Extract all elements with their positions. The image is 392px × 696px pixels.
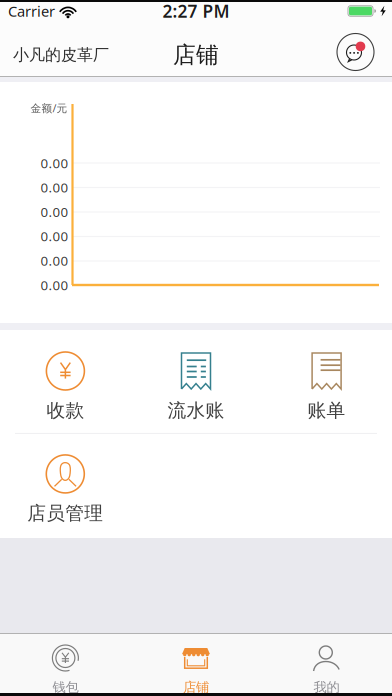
- staticText: 账单: [308, 399, 346, 422]
- staticText: 店铺: [173, 41, 219, 69]
- staticText: 0.00: [40, 203, 68, 221]
- staticText: 0.00: [40, 227, 68, 245]
- staticText: 0.00: [40, 154, 68, 172]
- staticText: 店员管理: [27, 502, 103, 525]
- staticText: 0.00: [40, 276, 68, 294]
- button[interactable]: 店员管理: [0, 455, 131, 525]
- button[interactable]: 钱包: [0, 634, 131, 695]
- staticText: Carrier: [8, 1, 55, 21]
- button[interactable]: 账单: [261, 352, 392, 422]
- button[interactable]: 消息: [337, 25, 392, 71]
- staticText: 金额/元: [30, 101, 67, 115]
- staticText: 我的: [314, 679, 340, 695]
- staticText: 店铺: [183, 679, 209, 695]
- staticText: 小凡的皮革厂: [13, 45, 109, 65]
- staticText: 收款: [46, 399, 84, 422]
- button[interactable]: 我的: [261, 634, 392, 695]
- button[interactable]: 流水账: [131, 352, 261, 422]
- staticText: 0.00: [40, 178, 68, 196]
- staticText: 2:27 PM: [162, 0, 229, 22]
- staticText: 钱包: [52, 679, 78, 695]
- staticText: 0.00: [40, 252, 68, 269]
- button[interactable]: 收款: [0, 352, 131, 422]
- button[interactable]: 店铺: [131, 634, 261, 695]
- staticText: 流水账: [167, 399, 224, 422]
